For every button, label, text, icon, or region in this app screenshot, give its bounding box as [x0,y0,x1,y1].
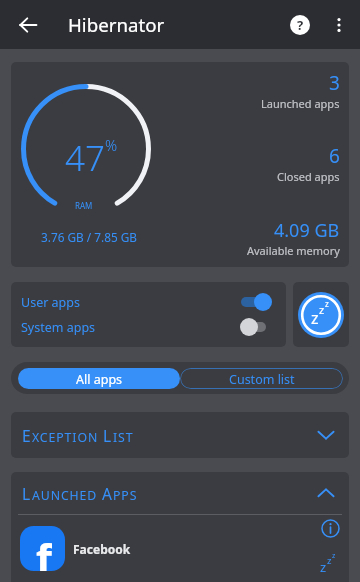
staticText: Hibernator [68,12,165,37]
staticText: A [102,483,113,504]
staticText: XCEPTION [32,429,99,446]
staticText: f [36,530,52,571]
staticText: ? [297,16,304,34]
staticText: Custom list [229,371,295,388]
button[interactable]: Toggle off [240,315,278,339]
button[interactable]: User apps [11,286,286,318]
staticText: % [105,135,118,155]
staticText: E [22,425,32,446]
staticText: PPS [113,487,138,504]
staticText: L [22,483,32,504]
staticText: RAM [75,200,93,211]
staticText: 6 [329,143,340,169]
staticText: 3 [329,70,340,96]
staticText: Launched apps [261,96,340,111]
staticText: z [332,551,336,561]
button[interactable]: App info [317,515,343,541]
button[interactable]: f [11,515,349,581]
staticText: z [325,298,329,309]
button[interactable]: Help [278,3,322,47]
staticText: z [311,307,319,329]
button[interactable]: Custom list [180,368,343,389]
button[interactable]: Back [6,3,50,47]
staticText: z [327,554,332,567]
staticText: IST [113,429,134,446]
button[interactable]: E [11,412,349,458]
button[interactable]: Hibernate all apps [293,282,349,347]
staticText: 3.76 GB / 7.85 GB [41,229,137,245]
staticText: z [319,302,325,317]
button[interactable]: L [11,472,349,514]
button[interactable]: More options [319,5,359,45]
staticText: AUNCHED [32,487,98,504]
staticText: All apps [76,371,123,388]
staticText: Closed apps [277,169,340,184]
staticText: Facebook [73,541,131,557]
staticText: User apps [21,294,80,311]
staticText: z [320,558,327,576]
staticText: 4.09 GB [274,218,340,243]
staticText: 47 [65,134,105,182]
staticText: Available memory [247,243,340,258]
button[interactable]: Toggle on [240,290,278,314]
button[interactable]: All apps [18,368,180,389]
button[interactable]: Hibernate app [313,552,343,578]
staticText: System apps [21,319,96,336]
staticText: L [103,425,113,446]
button[interactable]: System apps [11,311,286,343]
